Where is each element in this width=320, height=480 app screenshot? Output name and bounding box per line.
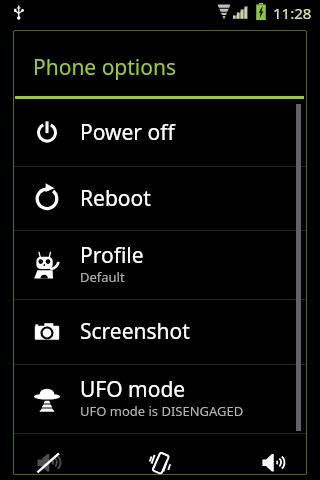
staticText: UFO mode is DISENGAGED	[80, 402, 244, 420]
button[interactable]: Silent mode	[13, 433, 111, 474]
button[interactable]: Vibrate mode	[111, 433, 209, 474]
staticText: Profile	[80, 241, 144, 270]
staticText: Phone options	[33, 53, 177, 82]
staticText: Default	[80, 268, 125, 286]
staticText: Screenshot	[80, 317, 190, 346]
button[interactable]: Screenshot	[13, 299, 307, 364]
staticText: 11:28	[273, 3, 312, 23]
button[interactable]: Profile	[13, 230, 307, 299]
button[interactable]: Reboot	[13, 166, 307, 230]
staticText: Power off	[80, 118, 175, 147]
button[interactable]: Sound on	[209, 433, 307, 474]
staticText: UFO mode	[80, 375, 186, 404]
button[interactable]: Power off	[13, 98, 307, 166]
button[interactable]: UFO mode	[13, 364, 307, 433]
staticText: Reboot	[80, 184, 151, 213]
